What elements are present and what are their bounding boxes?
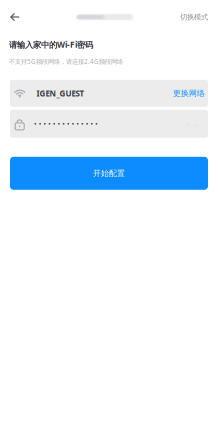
staticText: 请输入家中的Wi-Fi密码 (9, 39, 93, 50)
staticText: 不支持5G频段网络，请连接2.4G频段网络 (9, 57, 123, 66)
button[interactable]: 更换网络 (173, 80, 208, 107)
button[interactable]: 开始配置 (10, 157, 208, 190)
staticText: 开始配置 (93, 168, 125, 178)
button[interactable]: Back (0, 3, 29, 31)
staticText: 切换模式 (180, 12, 208, 22)
staticText: IGEN_GUEST (37, 88, 85, 99)
button[interactable]: 切换模式 (180, 3, 218, 31)
staticText: 更换网络 (173, 88, 205, 98)
